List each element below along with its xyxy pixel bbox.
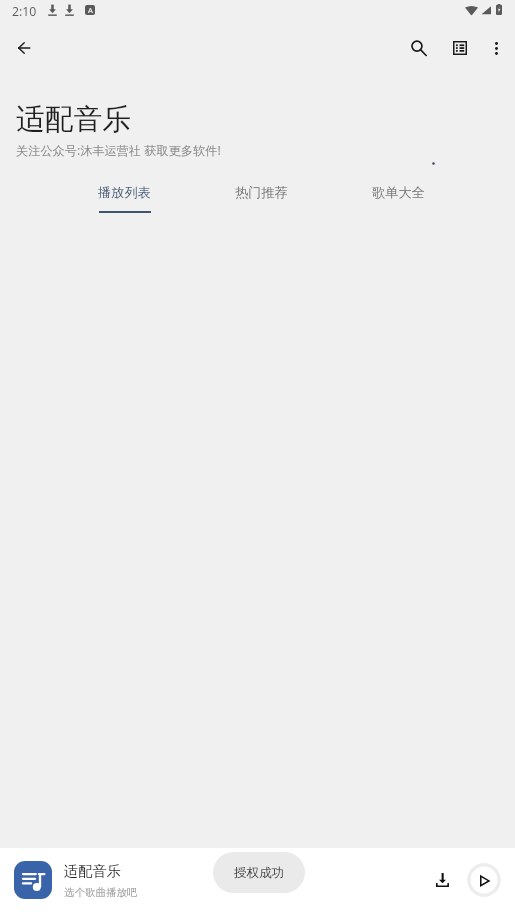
staticText: 选个歌曲播放吧 (64, 886, 138, 899)
staticText: 播放列表 (98, 184, 151, 201)
staticText: 歌单大全 (372, 184, 425, 201)
button[interactable]: Back (4, 29, 44, 69)
staticText: 2:10 (12, 3, 37, 20)
staticText: 适配音乐 (16, 101, 132, 137)
staticText: 适配音乐 (64, 862, 121, 880)
staticText: A (88, 5, 93, 15)
button[interactable]: 热门推荐 (193, 184, 330, 224)
staticText: 授权成功 (234, 865, 285, 881)
button[interactable]: 播放列表 (56, 184, 193, 224)
button[interactable]: 歌单大全 (330, 184, 467, 224)
staticText: 热门推荐 (235, 184, 288, 201)
button[interactable]: Play (467, 863, 501, 897)
staticText: 关注公众号:沐丰运营社 获取更多软件! (16, 142, 221, 159)
button[interactable]: Album art (14, 861, 52, 899)
button[interactable]: More options (476, 29, 515, 69)
button[interactable]: Download (426, 864, 458, 896)
button[interactable]: Playlist (440, 29, 480, 69)
button[interactable]: Search (399, 29, 439, 69)
